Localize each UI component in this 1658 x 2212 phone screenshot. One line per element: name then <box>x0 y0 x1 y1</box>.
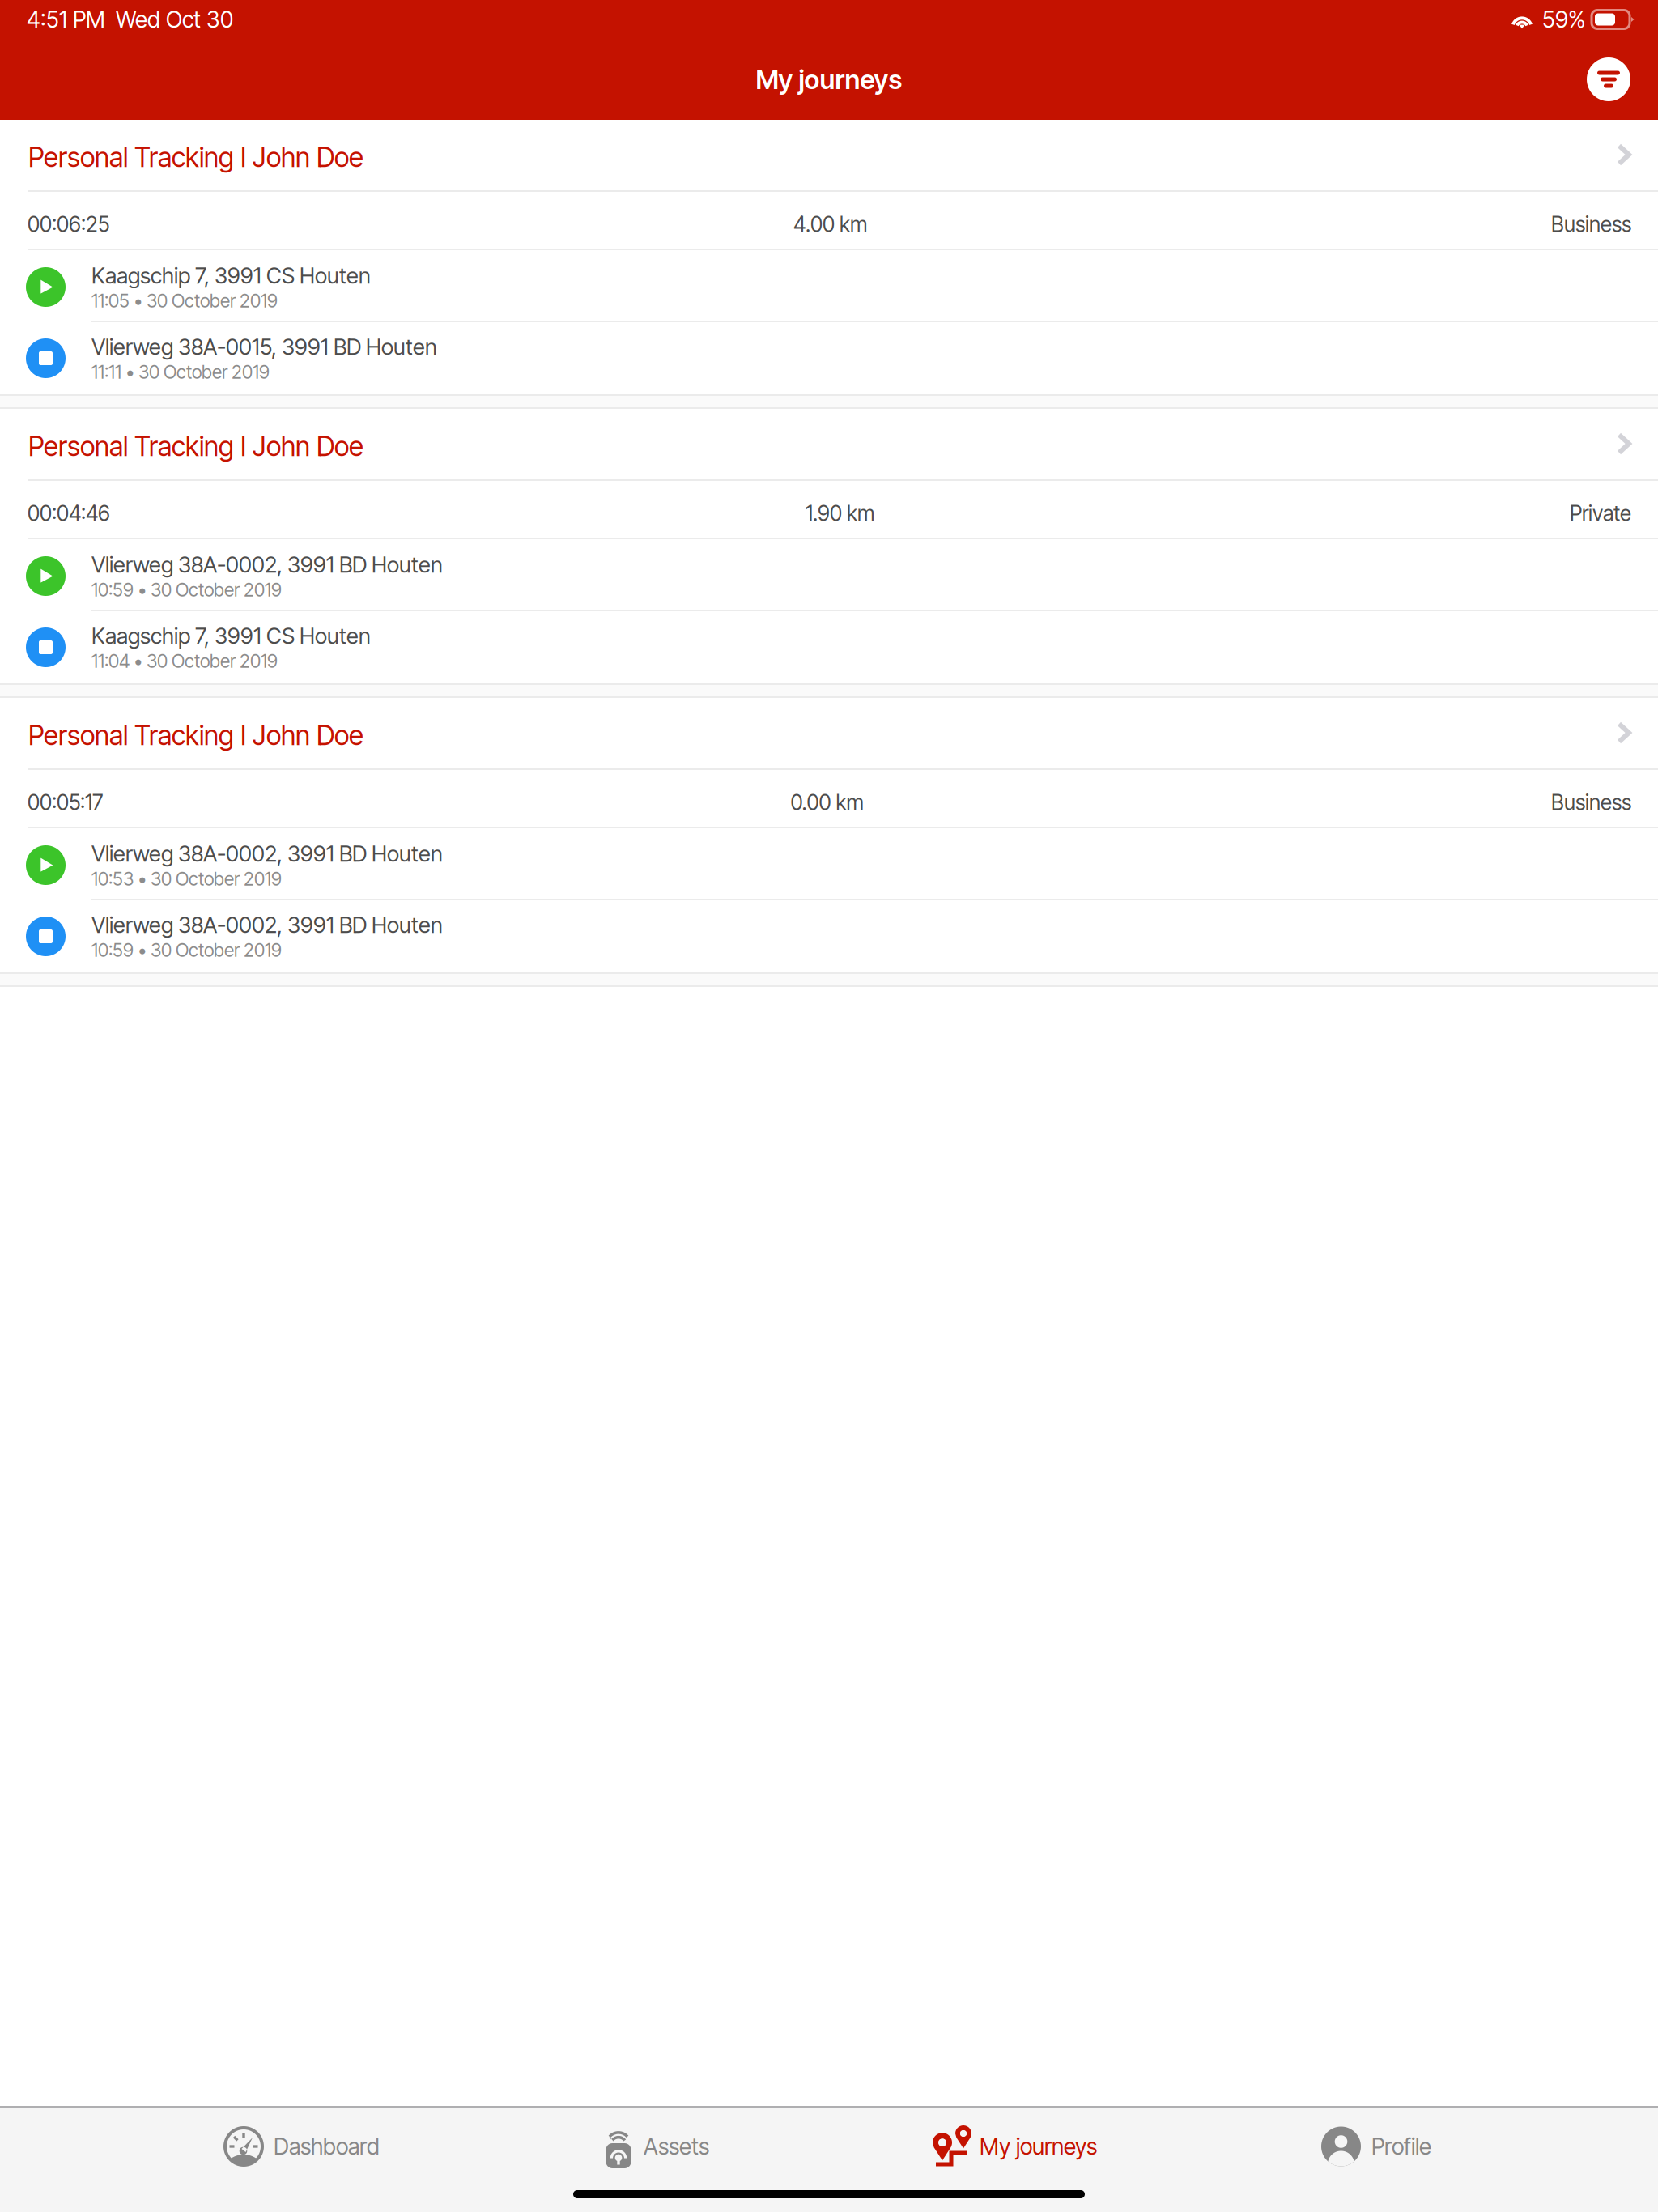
staticText: 1.90 km <box>806 501 874 526</box>
staticText: 59% <box>1542 6 1585 33</box>
staticText: Kaagschip 7, 3991 CS Houten <box>91 622 371 649</box>
button[interactable]: Assets <box>602 2110 709 2183</box>
staticText: Vlierweg 38A-0002, 3991 BD Houten <box>91 551 443 578</box>
staticText: Business <box>1551 212 1631 237</box>
staticText: Personal Tracking I John Doe <box>28 719 363 751</box>
button[interactable]: My journeys <box>933 2110 1097 2183</box>
staticText: Private <box>1570 501 1631 526</box>
staticText: 00:04:46 <box>28 501 110 526</box>
staticText: Vlierweg 38A-0002, 3991 BD Houten <box>91 912 443 938</box>
staticText: Kaagschip 7, 3991 CS Houten <box>91 262 371 289</box>
staticText: Assets <box>644 2133 709 2160</box>
staticText: 10:59 • 30 October 2019 <box>91 579 282 601</box>
button[interactable]: Personal Tracking I John Doe <box>0 120 1658 190</box>
button[interactable]: Profile <box>1321 2110 1431 2183</box>
staticText: 10:59 • 30 October 2019 <box>91 939 282 961</box>
staticText: Vlierweg 38A-0015, 3991 BD Houten <box>91 333 437 360</box>
button[interactable]: Filter <box>1587 57 1630 101</box>
staticText: 10:53 • 30 October 2019 <box>91 868 282 890</box>
staticText: 11:04 • 30 October 2019 <box>91 650 278 672</box>
button[interactable]: Dashboard <box>224 2110 380 2183</box>
staticText: 00:05:17 <box>28 790 103 815</box>
staticText: 4:51 PM <box>27 6 105 33</box>
staticText: 0.00 km <box>791 790 863 815</box>
staticText: Personal Tracking I John Doe <box>28 430 363 462</box>
staticText: My journeys <box>980 2133 1097 2160</box>
staticText: Vlierweg 38A-0002, 3991 BD Houten <box>91 840 443 867</box>
staticText: Business <box>1551 790 1631 815</box>
staticText: Profile <box>1371 2133 1431 2160</box>
staticText: Dashboard <box>274 2133 380 2160</box>
button[interactable]: Personal Tracking I John Doe <box>0 409 1658 479</box>
staticText: Personal Tracking I John Doe <box>28 141 363 173</box>
staticText: My journeys <box>756 63 902 95</box>
button[interactable]: Personal Tracking I John Doe <box>0 698 1658 768</box>
staticText: 00:06:25 <box>28 212 109 237</box>
staticText: 11:11 • 30 October 2019 <box>91 361 270 383</box>
staticText: 11:05 • 30 October 2019 <box>91 290 278 312</box>
staticText: Wed Oct 30 <box>116 6 233 33</box>
staticText: 4.00 km <box>793 212 867 237</box>
